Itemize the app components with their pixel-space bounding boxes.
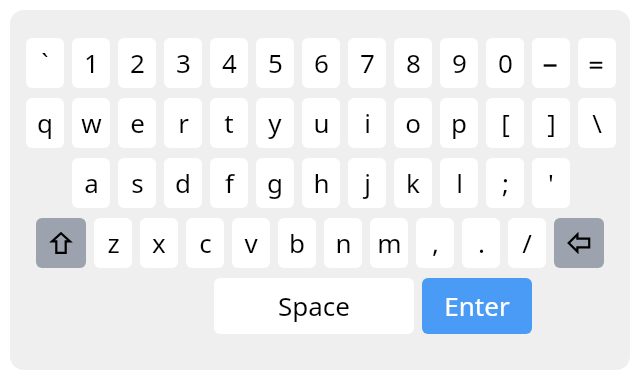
staticText: n <box>335 225 352 260</box>
staticText: a <box>84 165 99 200</box>
button[interactable]: f <box>210 158 248 208</box>
button[interactable]: w <box>72 98 110 148</box>
button[interactable]: b <box>278 218 316 268</box>
staticText: 5 <box>268 45 283 80</box>
staticText: 4 <box>222 45 237 80</box>
staticText: ` <box>41 45 49 80</box>
staticText: x <box>152 225 166 260</box>
staticText: r <box>178 105 189 140</box>
button[interactable]: j <box>348 158 386 208</box>
button[interactable]: y <box>256 98 294 148</box>
staticText: , <box>432 225 439 260</box>
button[interactable]: 4 <box>210 38 248 88</box>
button[interactable]: v <box>232 218 270 268</box>
button[interactable]: d <box>164 158 202 208</box>
button[interactable]: Enter <box>422 278 532 334</box>
staticText: p <box>451 105 467 140</box>
staticText: . <box>478 225 485 260</box>
staticText: 8 <box>406 45 421 80</box>
staticText: u <box>313 105 330 140</box>
button[interactable]: t <box>210 98 248 148</box>
staticText: c <box>199 225 212 260</box>
staticText: y <box>268 105 282 140</box>
button[interactable]: a <box>72 158 110 208</box>
button[interactable]: ` <box>26 38 64 88</box>
button[interactable]: \ <box>578 98 616 148</box>
button[interactable]: ] <box>532 98 570 148</box>
staticText: / <box>522 225 532 260</box>
staticText: [ <box>501 105 510 140</box>
staticText: j <box>364 165 371 200</box>
button[interactable]: , <box>416 218 454 268</box>
button[interactable]: u <box>302 98 340 148</box>
button[interactable]: ; <box>486 158 524 208</box>
button[interactable]: 6 <box>302 38 340 88</box>
button[interactable]: 8 <box>394 38 432 88</box>
button[interactable]: r <box>164 98 202 148</box>
button[interactable]: m <box>370 218 408 268</box>
button[interactable]: k <box>394 158 432 208</box>
button[interactable]: 0 <box>486 38 524 88</box>
button[interactable]: i <box>348 98 386 148</box>
button[interactable]: z <box>94 218 132 268</box>
staticText: k <box>406 165 420 200</box>
button[interactable]: Minus <box>532 38 570 88</box>
button[interactable]: n <box>324 218 362 268</box>
staticText: o <box>405 105 421 140</box>
staticText: z <box>107 225 120 260</box>
staticText: t <box>224 105 234 140</box>
button[interactable]: / <box>508 218 546 268</box>
button[interactable]: 1 <box>72 38 110 88</box>
staticText: ; <box>502 165 509 200</box>
staticText: Space <box>278 288 350 323</box>
button[interactable]: Shift <box>36 218 86 268</box>
staticText: v <box>244 225 258 260</box>
staticText: 7 <box>360 45 375 80</box>
staticText: l <box>456 165 463 200</box>
staticText: 9 <box>452 45 467 80</box>
staticText: w <box>81 105 102 140</box>
staticText: d <box>175 165 191 200</box>
staticText: 6 <box>314 45 329 80</box>
button[interactable]: ' <box>532 158 570 208</box>
staticText: e <box>130 105 145 140</box>
staticText: g <box>267 165 283 200</box>
staticText: ] <box>547 105 556 140</box>
button[interactable]: 9 <box>440 38 478 88</box>
button[interactable]: 7 <box>348 38 386 88</box>
button[interactable]: Backspace <box>554 218 604 268</box>
button[interactable]: [ <box>486 98 524 148</box>
button[interactable]: o <box>394 98 432 148</box>
button[interactable]: Space <box>214 278 414 334</box>
button[interactable]: 2 <box>118 38 156 88</box>
staticText: 0 <box>498 45 513 80</box>
staticText: Enter <box>444 288 510 323</box>
staticText: f <box>225 165 234 200</box>
button[interactable]: g <box>256 158 294 208</box>
button[interactable]: x <box>140 218 178 268</box>
staticText: 1 <box>84 45 99 80</box>
staticText: s <box>131 165 144 200</box>
staticText: i <box>364 105 371 140</box>
staticText: \ <box>592 105 602 140</box>
staticText: q <box>37 105 53 140</box>
staticText: 2 <box>130 45 145 80</box>
button[interactable]: Equals <box>578 38 616 88</box>
button[interactable]: . <box>462 218 500 268</box>
button[interactable]: s <box>118 158 156 208</box>
staticText: 3 <box>176 45 191 80</box>
staticText: m <box>377 225 402 260</box>
button[interactable]: h <box>302 158 340 208</box>
staticText: b <box>289 225 305 260</box>
button[interactable]: l <box>440 158 478 208</box>
staticText: ' <box>548 165 554 200</box>
staticText: h <box>313 165 330 200</box>
button[interactable]: e <box>118 98 156 148</box>
button[interactable]: 5 <box>256 38 294 88</box>
button[interactable]: 3 <box>164 38 202 88</box>
button[interactable]: c <box>186 218 224 268</box>
button[interactable]: p <box>440 98 478 148</box>
button[interactable]: q <box>26 98 64 148</box>
